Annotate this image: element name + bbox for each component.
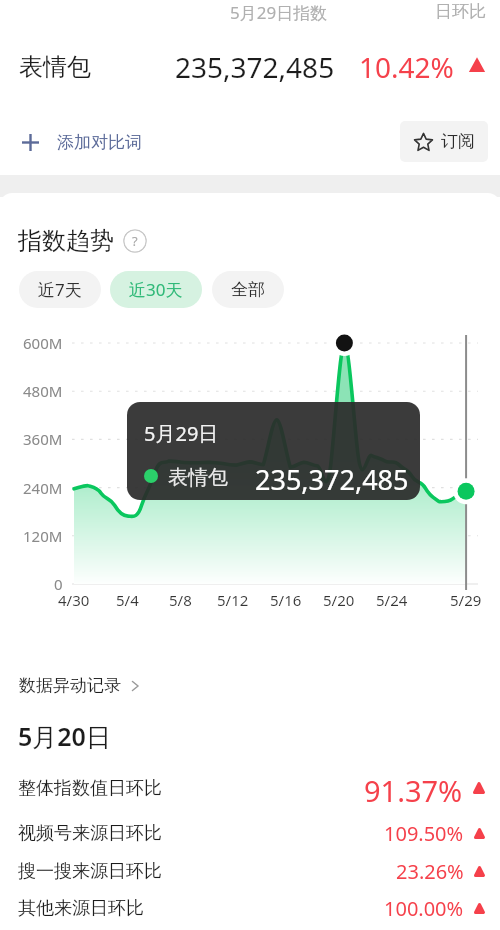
button[interactable]: 其他来源日环比 xyxy=(0,891,500,925)
button[interactable]: 全部 xyxy=(212,271,284,308)
staticText: 近30天 xyxy=(129,278,183,301)
staticText: 订阅 xyxy=(441,131,475,152)
staticText: 添加对比词 xyxy=(57,132,142,153)
staticText: 23.26% xyxy=(396,858,464,885)
staticText: 5月29日指数 xyxy=(230,1,328,24)
staticText: 表情包 xyxy=(168,465,228,490)
staticText: 5月20日 xyxy=(18,719,111,753)
staticText: 指数趋势 xyxy=(18,226,114,256)
staticText: 视频号来源日环比 xyxy=(18,822,162,845)
button[interactable]: 视频号来源日环比 xyxy=(0,816,500,850)
staticText: 日环比 xyxy=(435,1,486,22)
staticText: 10.42% xyxy=(359,48,454,86)
staticText: 360M xyxy=(23,429,63,449)
staticText: 5/16 xyxy=(270,590,302,610)
staticText: 近7天 xyxy=(38,278,82,301)
staticText: 5/12 xyxy=(217,590,249,610)
button[interactable]: 帮助 xyxy=(123,229,147,253)
button[interactable]: 近7天 xyxy=(19,271,101,308)
staticText: 0 xyxy=(54,574,63,594)
button[interactable]: 数据异动记录 xyxy=(14,670,147,701)
staticText: 其他来源日环比 xyxy=(18,897,144,920)
staticText: 100.00% xyxy=(384,895,464,922)
staticText: 480M xyxy=(23,381,63,401)
staticText: 整体指数值日环比 xyxy=(18,777,162,800)
staticText: 240M xyxy=(23,478,63,498)
staticText: 5月29日 xyxy=(144,420,219,447)
staticText: 搜一搜来源日环比 xyxy=(18,860,162,883)
staticText: ? xyxy=(132,232,138,250)
staticText: 5/4 xyxy=(116,590,139,610)
staticText: 109.50% xyxy=(384,820,464,847)
staticText: 5/24 xyxy=(376,590,408,610)
staticText: 4/30 xyxy=(58,590,90,610)
staticText: 600M xyxy=(23,333,63,353)
staticText: 5/8 xyxy=(169,590,192,610)
staticText: 表情包 xyxy=(19,52,91,82)
staticText: 91.37% xyxy=(364,771,463,805)
button[interactable]: 近30天 xyxy=(110,271,202,308)
other: 上涨 xyxy=(470,59,484,72)
staticText: 120M xyxy=(23,526,63,546)
button[interactable]: 添加对比词 xyxy=(14,124,150,161)
staticText: 235,372,485 xyxy=(175,48,335,86)
staticText: 5/20 xyxy=(323,590,355,610)
staticText: 5/29 xyxy=(450,590,482,610)
staticText: 数据异动记录 xyxy=(19,675,121,696)
staticText: 235,372,485 xyxy=(255,461,409,498)
button[interactable]: 整体指数值日环比 xyxy=(0,771,500,805)
button[interactable]: 搜一搜来源日环比 xyxy=(0,854,500,888)
staticText: 全部 xyxy=(231,279,265,300)
button[interactable]: 订阅 xyxy=(400,121,488,162)
